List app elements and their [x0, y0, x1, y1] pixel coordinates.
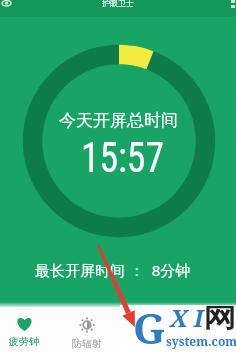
staticText: 网 [203, 302, 236, 335]
staticText: system.com [166, 333, 236, 349]
staticText: 15:57 [81, 132, 164, 172]
staticText: G [133, 299, 166, 346]
staticText: 最长开屏时间 ： 8分钟 [35, 260, 191, 280]
staticText: X I [170, 301, 204, 334]
button[interactable]: 疲劳钟 [0, 307, 48, 352]
staticText: 今天开屏总时间 [59, 110, 178, 131]
button[interactable]: 防辐射 [48, 307, 126, 352]
staticText: 疲劳钟 [9, 335, 39, 348]
staticText: 防辐射 [72, 337, 102, 350]
staticText: 护眼卫士 [102, 0, 134, 8]
